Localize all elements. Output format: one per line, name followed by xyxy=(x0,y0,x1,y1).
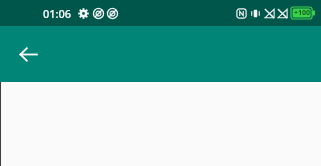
staticText: +100 xyxy=(294,8,311,18)
staticText: 01:06 xyxy=(43,6,72,21)
button[interactable]: Back xyxy=(8,34,48,74)
